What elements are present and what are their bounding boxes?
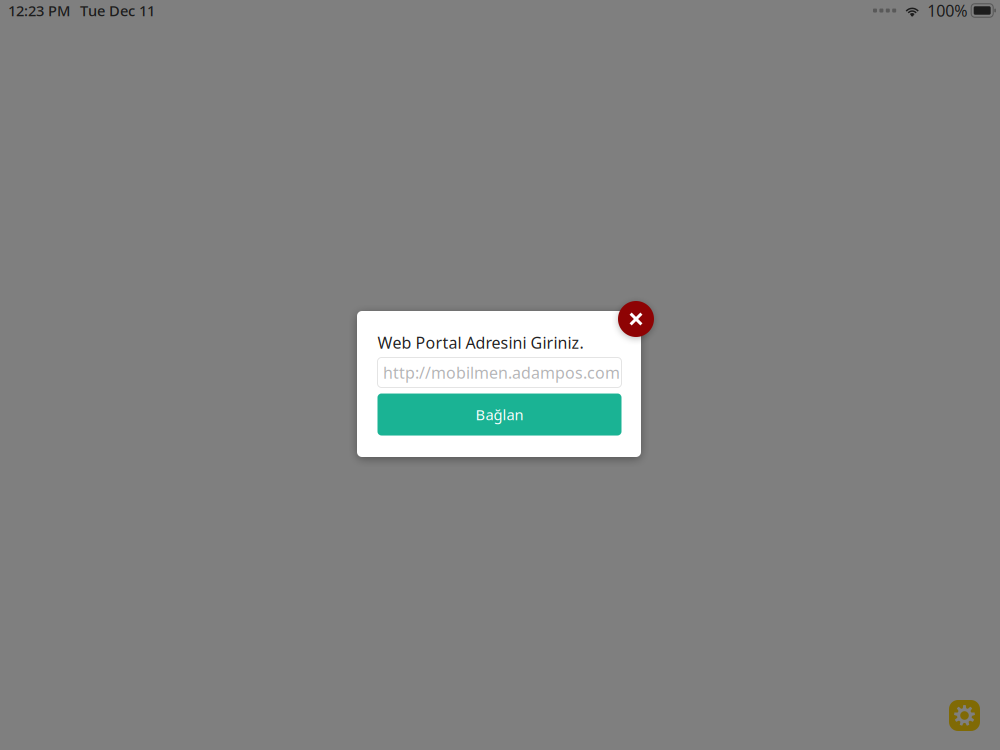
staticText: 100% bbox=[927, 0, 967, 21]
button[interactable]: Settings bbox=[949, 700, 980, 731]
button[interactable]: Close bbox=[618, 301, 654, 337]
button[interactable]: http://mobilmen.adampos.com bbox=[377, 357, 621, 387]
staticText: Web Portal Adresini Giriniz. bbox=[377, 332, 583, 353]
staticText: 12:23 PM bbox=[8, 1, 70, 20]
staticText: http://mobilmen.adampos.com bbox=[383, 362, 620, 383]
staticText: Tue Dec 11 bbox=[80, 1, 155, 20]
staticText: Bağlan bbox=[475, 405, 523, 424]
button[interactable]: Bağlan bbox=[377, 393, 621, 435]
